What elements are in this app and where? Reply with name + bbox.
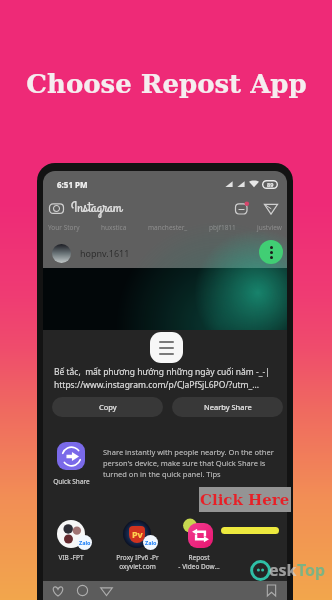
- staticText: manchester_: [148, 223, 188, 232]
- button[interactable]: Zalo: [45, 520, 97, 562]
- staticText: Top: [297, 559, 326, 581]
- staticText: huxstica: [101, 223, 127, 232]
- staticText: 89: [267, 181, 274, 188]
- button[interactable]: Expand share sheet: [150, 332, 183, 363]
- staticText: Share instantly with people nearby. On t…: [103, 447, 287, 479]
- staticText: Choose Repost App: [26, 69, 307, 100]
- staticText: Repost - Video Dow...: [178, 553, 220, 571]
- staticText: hopnv.1611: [80, 247, 130, 259]
- button[interactable]: Pv: [111, 520, 163, 571]
- button[interactable]: Save: [265, 584, 278, 597]
- staticText: esk: [269, 559, 297, 581]
- staticText: Zalo: [145, 539, 157, 546]
- staticText: Nearby Share: [204, 402, 252, 412]
- button[interactable]: IGTV: [235, 202, 248, 215]
- staticText: pbjf1811: [209, 223, 236, 232]
- button[interactable]: Click Here: [199, 487, 291, 512]
- staticText: Proxy IPv6 -Pr oxyviet.com: [116, 553, 159, 571]
- staticText: Click Here: [200, 491, 290, 509]
- button[interactable]: Repost - Video Dow...: [173, 520, 225, 571]
- staticText: Copy: [99, 402, 117, 412]
- button[interactable]: Comment: [76, 584, 89, 597]
- button[interactable]: Copy: [52, 397, 163, 417]
- staticText: Pv: [132, 528, 143, 540]
- button[interactable]: Share post: [100, 584, 113, 597]
- staticText: VIB -FPT: [58, 553, 84, 562]
- staticText: justview: [257, 223, 282, 232]
- button[interactable]: More options: [259, 240, 283, 264]
- staticText: 6:51 PM: [57, 179, 88, 190]
- staticText: Quick Share: [53, 477, 90, 486]
- staticText: Bế tắc, mất phương hướng những ngày cuối…: [54, 366, 270, 378]
- button[interactable]: Quick Share: [45, 442, 97, 486]
- staticText: Your Story: [48, 223, 80, 232]
- staticText: Instagram: [71, 197, 122, 219]
- staticText: https://www.instagram.com/p/CJaPfSjL6PO/…: [54, 379, 260, 391]
- button[interactable]: Like: [51, 584, 65, 598]
- staticText: Zalo: [79, 539, 91, 546]
- button[interactable]: Camera: [49, 202, 64, 215]
- button[interactable]: Direct messages: [264, 201, 278, 215]
- button[interactable]: Nearby Share: [172, 397, 283, 417]
